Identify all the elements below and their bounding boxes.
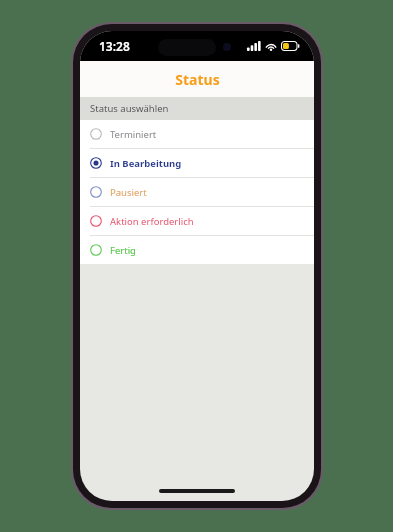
staticText: Aktion erforderlich [110,215,194,228]
staticText: Pausiert [110,186,147,199]
button[interactable]: Fertig [80,236,314,264]
staticText: Fertig [110,244,136,257]
button[interactable]: Terminiert [80,120,314,148]
staticText: Terminiert [110,128,157,141]
staticText: In Bearbeitung [110,157,182,170]
button[interactable]: Aktion erforderlich [80,207,314,235]
staticText: Status auswählen [90,102,169,115]
button[interactable]: In Bearbeitung [80,149,314,177]
button[interactable]: Pausiert [80,178,314,206]
staticText: Status [175,70,220,89]
staticText: 13:28 [99,38,130,54]
